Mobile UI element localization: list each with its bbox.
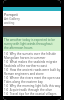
staticText: Mongolian horses in summer [4, 56, 46, 60]
staticText: 1:0 What makes the seabirds migrate each [4, 60, 61, 64]
staticText: 1:0 Where the rivers meet the open sea a… [4, 76, 61, 80]
staticText: 1:0 A quiet walk through the olive grove… [4, 88, 61, 92]
button[interactable]: 1:0 Why the sunsets over the hillside lo… [4, 52, 61, 60]
button[interactable]: 1:0 Travel tips for the coastal villages [4, 92, 61, 96]
staticText: Art Gallery [4, 17, 20, 21]
staticText: 1:0 How the ancient roads were built by [4, 68, 61, 72]
staticText: Seabirds of the northern coast [4, 64, 47, 68]
staticText: Tides along the eastern bay [4, 80, 43, 84]
button[interactable]: 1:0 Why the morning light falls this way [4, 84, 61, 88]
button[interactable]: 1:0 A quiet walk through the olive grove… [4, 88, 61, 92]
button[interactable]: 1:0 Where the rivers meet the open sea a… [4, 76, 61, 84]
staticText: waiting [4, 21, 15, 25]
staticText: sunny with light winds throughout [4, 42, 53, 46]
staticText: Roman engineers and stone [4, 72, 44, 76]
button[interactable]: 1:0 How the ancient roads were built by [4, 68, 61, 76]
staticText: 1:0 Why the sunsets over the hillside lo… [4, 52, 61, 56]
staticText: the afternoon hours [4, 46, 33, 50]
button[interactable]: The weather today is expected to be [3, 37, 61, 51]
staticText: 1:0 Travel tips for the coastal villages [4, 92, 57, 96]
button[interactable]: 1:0 What makes the seabirds migrate each [4, 60, 61, 68]
staticText: 1:0 Why the morning light falls this way [4, 84, 61, 88]
staticText: Pompeii [4, 12, 19, 17]
button[interactable]: Play video [3, 26, 61, 37]
staticText: The weather today is expected to be [4, 38, 55, 42]
